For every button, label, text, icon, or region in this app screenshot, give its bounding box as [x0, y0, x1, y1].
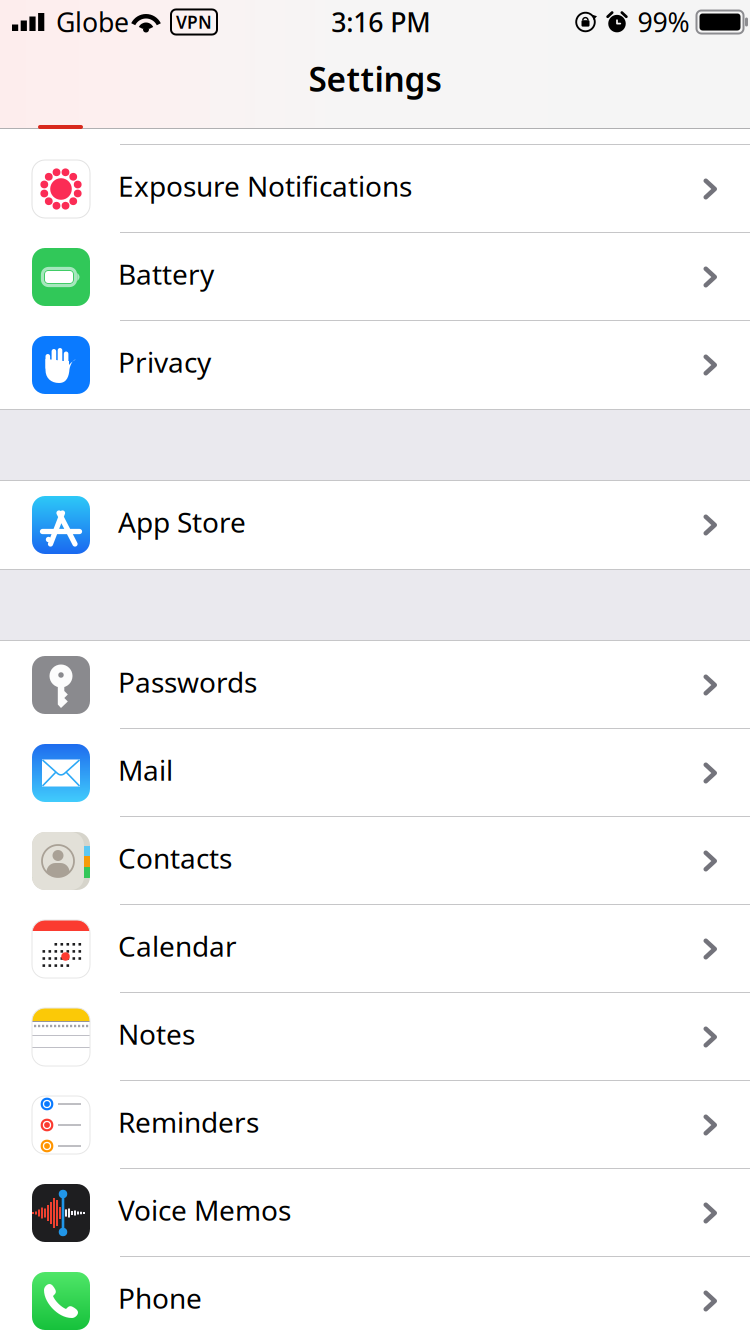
staticText: Globe	[56, 4, 129, 40]
button[interactable]: Reminders	[0, 1081, 750, 1169]
staticText: 3:16 PM	[331, 4, 430, 40]
staticText: Reminders	[118, 1103, 259, 1141]
staticText: Notes	[118, 1015, 195, 1053]
button[interactable]: Contacts	[0, 817, 750, 905]
staticText: Voice Memos	[118, 1191, 291, 1229]
staticText: Calendar	[118, 927, 237, 965]
staticText: VPN	[176, 10, 212, 33]
staticText: Phone	[118, 1279, 202, 1317]
button[interactable]: Exposure Notifications	[0, 145, 750, 233]
button[interactable]: Voice Memos	[0, 1169, 750, 1257]
staticText: Mail	[118, 751, 173, 789]
button[interactable]: Battery	[0, 233, 750, 321]
button[interactable]: Privacy	[0, 321, 750, 409]
staticText: Privacy	[118, 343, 211, 381]
staticText: Settings	[308, 57, 441, 101]
staticText: App Store	[118, 503, 246, 541]
button[interactable]: Calendar	[0, 905, 750, 993]
button[interactable]: Notes	[0, 993, 750, 1081]
button[interactable]: App Store	[0, 481, 750, 569]
button[interactable]: Phone	[0, 1257, 750, 1334]
button[interactable]: Passwords	[0, 641, 750, 729]
staticText: Contacts	[118, 839, 232, 877]
staticText: 99%	[637, 4, 689, 40]
button[interactable]: Mail	[0, 729, 750, 817]
staticText: Passwords	[118, 663, 257, 701]
staticText: Exposure Notifications	[118, 167, 412, 205]
staticText: Battery	[118, 255, 214, 293]
